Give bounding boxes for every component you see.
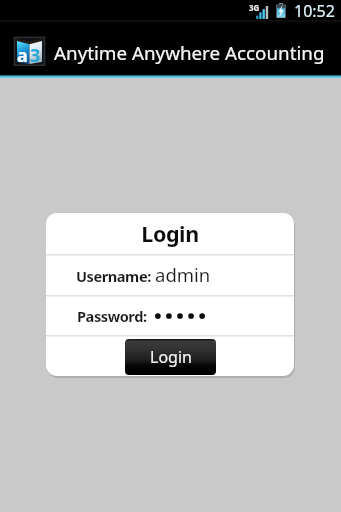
staticText: Login: [150, 346, 192, 368]
staticText: Anytime Anywhere Accounting: [54, 40, 325, 66]
staticText: Login: [141, 219, 199, 248]
staticText: 3G: [249, 2, 260, 13]
staticText: 10:52: [294, 0, 335, 20]
staticText: 3: [30, 43, 41, 68]
staticText: a: [17, 43, 28, 68]
staticText: Password:: [77, 306, 147, 326]
staticText: admin: [155, 262, 211, 287]
button[interactable]: Password:: [46, 297, 294, 335]
button[interactable]: Username:: [46, 256, 294, 295]
button[interactable]: Login: [125, 339, 216, 375]
button[interactable]: App icon, Anytime Anywhere Accounting: [13, 35, 46, 67]
staticText: Username:: [76, 266, 151, 286]
